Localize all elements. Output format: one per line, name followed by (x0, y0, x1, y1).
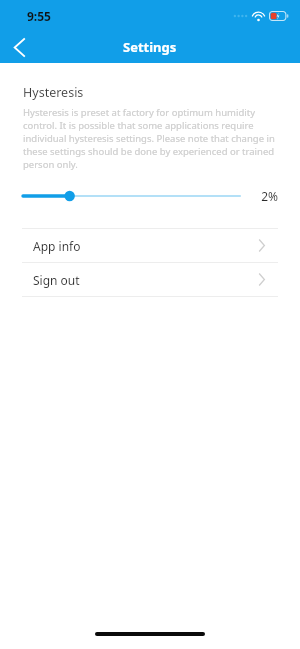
staticText: 9:55 (27, 8, 51, 24)
button[interactable]: Back (0, 31, 38, 63)
button[interactable]: Sign out (0, 263, 300, 296)
staticText: Hysteresis (23, 84, 84, 101)
staticText: 2% (261, 188, 278, 204)
staticText: Sign out (33, 272, 80, 288)
staticText: Settings (123, 38, 177, 56)
staticText: Hysteresis is preset at factory for opti… (23, 106, 282, 171)
button[interactable]: App info (0, 229, 300, 262)
button[interactable]: Hysteresis slider (23, 185, 240, 207)
staticText: App info (33, 238, 81, 254)
